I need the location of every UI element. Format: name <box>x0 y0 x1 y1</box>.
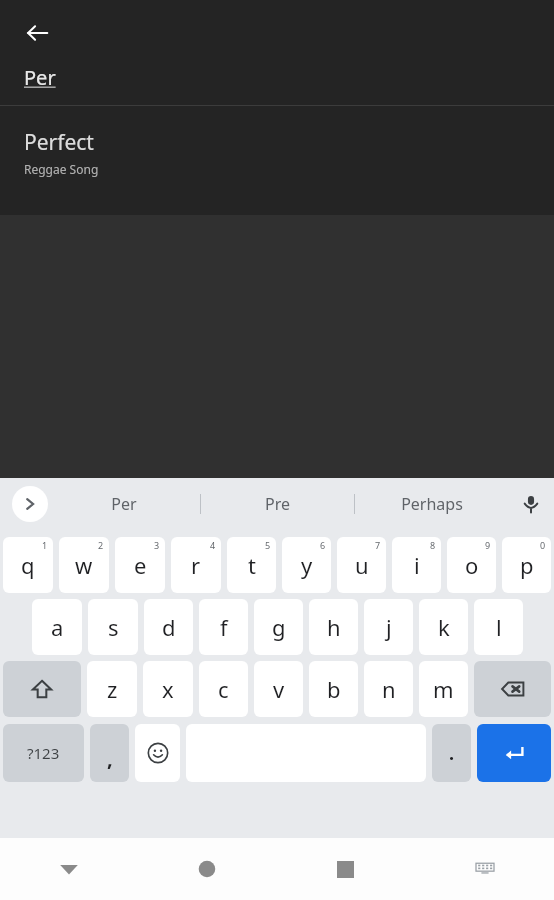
staticText: b <box>327 674 341 704</box>
button[interactable]: Back <box>0 838 138 900</box>
staticText: u <box>355 550 369 580</box>
button[interactable]: Backspace <box>474 661 551 717</box>
button[interactable]: b <box>309 661 358 717</box>
button[interactable]: Back <box>14 10 60 56</box>
button[interactable]: f <box>199 599 248 655</box>
button[interactable]: Perfect <box>0 106 554 201</box>
button[interactable]: j <box>364 599 413 655</box>
button[interactable]: Pre <box>201 478 354 530</box>
staticText: 7 <box>375 539 381 551</box>
button[interactable]: p <box>502 537 551 593</box>
button[interactable]: v <box>254 661 303 717</box>
button[interactable]: h <box>309 599 358 655</box>
staticText: Pre <box>265 493 290 515</box>
staticText: e <box>134 550 147 580</box>
button[interactable]: u <box>337 537 386 593</box>
staticText: s <box>108 612 119 642</box>
staticText: . <box>449 741 455 766</box>
staticText: k <box>438 612 450 642</box>
staticText: i <box>414 550 420 580</box>
staticText: t <box>248 550 256 580</box>
button[interactable]: x <box>143 661 193 717</box>
button[interactable]: z <box>87 661 137 717</box>
button[interactable]: k <box>419 599 468 655</box>
button[interactable]: Emoji <box>135 724 180 782</box>
staticText: 1 <box>42 539 48 551</box>
button[interactable]: i <box>392 537 441 593</box>
button[interactable]: c <box>199 661 248 717</box>
staticText: 4 <box>210 539 216 551</box>
button[interactable]: q <box>3 537 53 593</box>
staticText: z <box>107 674 118 704</box>
button[interactable]: Shift <box>3 661 81 717</box>
staticText: d <box>162 612 176 642</box>
button[interactable]: y <box>282 537 331 593</box>
button[interactable]: Per <box>48 478 200 530</box>
staticText: j <box>386 612 392 642</box>
staticText: c <box>218 674 229 704</box>
staticText: n <box>382 674 396 704</box>
button[interactable]: ?123 <box>3 724 84 782</box>
staticText: 0 <box>540 539 546 551</box>
staticText: o <box>465 550 479 580</box>
button[interactable]: Enter <box>477 724 551 782</box>
staticText: l <box>496 612 502 642</box>
button[interactable]: m <box>419 661 468 717</box>
staticText: y <box>301 550 313 580</box>
staticText: 9 <box>485 539 491 551</box>
staticText: Perfect <box>24 128 94 157</box>
staticText: Perhaps <box>401 493 463 515</box>
staticText: f <box>220 612 228 642</box>
staticText: 5 <box>265 539 271 551</box>
button[interactable]: s <box>88 599 138 655</box>
staticText: , <box>107 745 113 772</box>
button[interactable]: Perhaps <box>355 478 508 530</box>
staticText: 8 <box>430 539 436 551</box>
staticText: 2 <box>98 539 104 551</box>
staticText: Reggae Song <box>24 161 99 177</box>
button[interactable]: More suggestions <box>12 486 48 522</box>
button[interactable]: g <box>254 599 303 655</box>
staticText: 6 <box>320 539 326 551</box>
button[interactable]: o <box>447 537 496 593</box>
button[interactable]: , <box>90 724 129 782</box>
staticText: 3 <box>154 539 160 551</box>
staticText: q <box>21 550 35 580</box>
staticText: Per <box>111 493 137 515</box>
staticText: w <box>75 550 93 580</box>
staticText: g <box>272 612 286 642</box>
button[interactable]: Switch keyboard <box>415 838 554 900</box>
button[interactable]: n <box>364 661 413 717</box>
button[interactable]: l <box>474 599 523 655</box>
button[interactable]: e <box>115 537 165 593</box>
button[interactable]: Recent apps <box>276 838 415 900</box>
button[interactable]: Voice input <box>508 478 554 530</box>
staticText: v <box>273 674 285 704</box>
staticText: h <box>327 612 341 642</box>
button[interactable]: Home <box>138 838 276 900</box>
button[interactable]: a <box>32 599 82 655</box>
button[interactable]: d <box>144 599 193 655</box>
staticText: ?123 <box>27 743 60 763</box>
staticText: p <box>520 550 534 580</box>
staticText: m <box>433 674 454 704</box>
button[interactable]: r <box>171 537 221 593</box>
staticText: r <box>191 550 201 580</box>
button[interactable]: w <box>59 537 109 593</box>
button[interactable]: t <box>227 537 276 593</box>
staticText: a <box>51 612 64 642</box>
staticText: x <box>162 674 174 704</box>
button[interactable]: . <box>432 724 471 782</box>
staticText: Per <box>24 64 56 91</box>
